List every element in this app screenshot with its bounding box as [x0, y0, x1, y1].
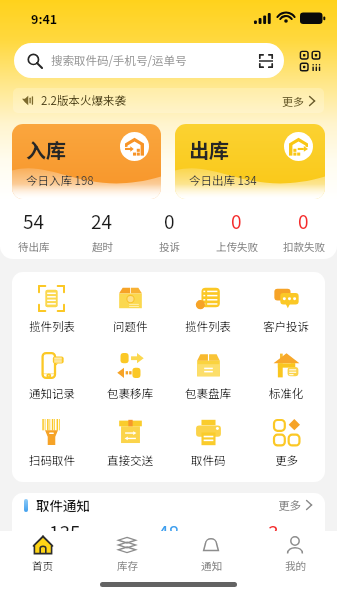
staticText: 标准化 [269, 385, 304, 402]
button[interactable]: 客户投诉 [247, 285, 325, 335]
button[interactable]: 揽件列表 [12, 285, 91, 335]
staticText: 通知 [201, 558, 222, 573]
staticText: 通知记录 [29, 385, 75, 402]
button[interactable]: 入库 [12, 124, 161, 199]
button[interactable]: 问题件 [91, 285, 169, 335]
staticText: 揽件列表 [185, 318, 231, 335]
staticText: 今日入库 198 [26, 172, 94, 189]
button[interactable]: 0 [270, 207, 337, 254]
button[interactable]: 0 [136, 207, 203, 254]
staticText: 直接交送 [107, 452, 153, 469]
staticText: 2.2版本火爆来袭 [41, 92, 126, 109]
button[interactable]: 直接交送 [91, 419, 169, 469]
staticText: 客户投诉 [263, 318, 309, 335]
staticText: 9:41 [31, 9, 58, 27]
staticText: 更多 [275, 452, 298, 469]
staticText: 54 [23, 207, 45, 235]
button[interactable]: 2.2版本火爆来袭 [13, 88, 324, 113]
staticText: 问题件 [113, 318, 148, 335]
staticText: 扫码取件 [29, 452, 75, 469]
button[interactable]: 包裹移库 [91, 352, 169, 402]
button[interactable]: 通知 [169, 531, 253, 576]
staticText: 取件通知 [36, 495, 90, 515]
button[interactable]: 我的 [253, 531, 337, 576]
staticText: 出库 [189, 135, 229, 164]
staticText: 待出库 [18, 239, 50, 254]
staticText: 0 [164, 207, 175, 235]
staticText: 今日出库 134 [189, 172, 257, 189]
staticText: 包裹移库 [107, 385, 153, 402]
staticText: 0 [298, 207, 309, 235]
button[interactable]: 搜索取件码/手机号/运单号 [14, 43, 284, 78]
staticText: 扣款失败 [283, 239, 325, 254]
button[interactable]: 出库 [175, 124, 325, 199]
button[interactable]: 标准化 [247, 352, 325, 402]
button[interactable]: 包裹盘库 [169, 352, 247, 402]
staticText: 48 [158, 518, 180, 546]
button[interactable]: 揽件列表 [169, 285, 247, 335]
button[interactable]: 取件码 [169, 419, 247, 469]
button[interactable]: 扫码取件 [12, 419, 91, 469]
staticText: 揽件列表 [29, 318, 75, 335]
staticText: 首页 [32, 558, 53, 573]
staticText: 3 [268, 518, 279, 546]
staticText: 我的 [285, 558, 306, 573]
button[interactable]: 首页 [0, 531, 85, 576]
staticText: 取件码 [191, 452, 226, 469]
button[interactable]: 更多 [247, 419, 325, 469]
button[interactable]: 扫一扫二维码 [296, 47, 324, 75]
staticText: 超时 [92, 239, 113, 254]
staticText: 更多 [282, 93, 304, 109]
button[interactable]: 通知记录 [12, 352, 91, 402]
button[interactable]: 取件通知 [24, 495, 313, 515]
staticText: 0 [231, 207, 242, 235]
button[interactable]: 54 [0, 207, 68, 254]
button[interactable]: 24 [68, 207, 136, 254]
staticText: 更多 [278, 497, 301, 514]
button[interactable]: 0 [203, 207, 270, 254]
staticText: 135 [49, 518, 81, 546]
staticText: 投诉 [159, 239, 180, 254]
staticText: 入库 [26, 135, 66, 164]
staticText: 24 [91, 207, 113, 235]
button[interactable]: 库存 [85, 531, 169, 576]
staticText: 包裹盘库 [185, 385, 231, 402]
staticText: 搜索取件码/手机号/运单号 [51, 52, 187, 69]
staticText: 库存 [117, 558, 138, 573]
staticText: 上传失败 [216, 239, 258, 254]
